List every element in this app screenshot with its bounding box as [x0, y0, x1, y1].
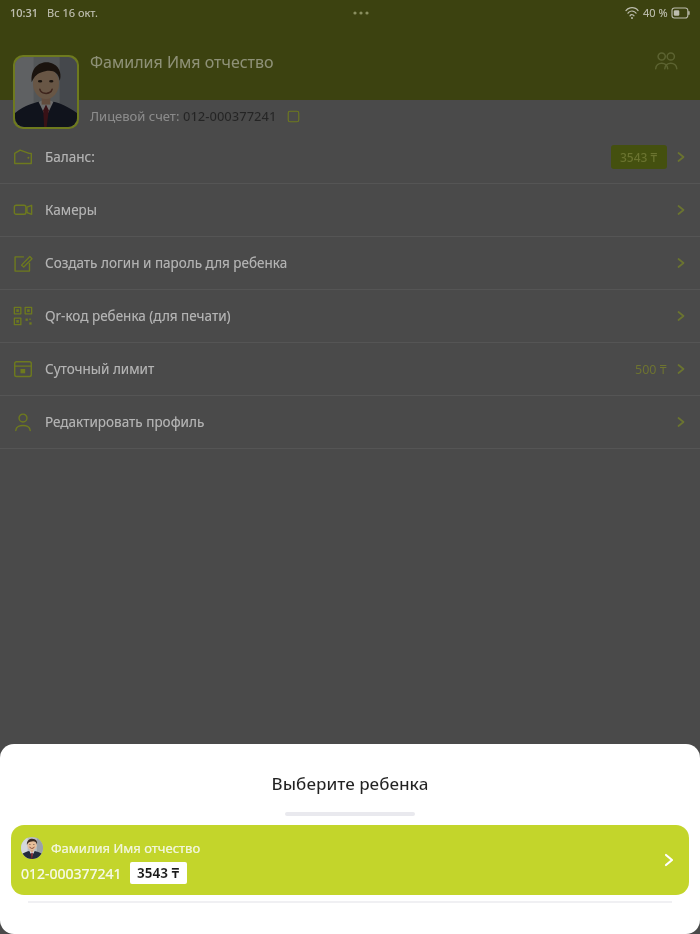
- staticText: 012-000377241: [183, 107, 277, 125]
- staticText: 3543 ₸: [620, 149, 658, 165]
- staticText: Вс 16 окт.: [47, 5, 98, 20]
- staticText: 40 %: [643, 5, 668, 20]
- button[interactable]: Qr-код ребенка (для печати): [0, 290, 700, 342]
- button[interactable]: Баланс:: [0, 131, 700, 183]
- staticText: Камеры: [45, 201, 98, 219]
- staticText: Выберите ребенка: [0, 772, 700, 795]
- staticText: Редактировать профиль: [45, 413, 205, 431]
- button[interactable]: Фамилия Имя отчество: [11, 825, 689, 895]
- staticText: Суточный лимит: [45, 360, 155, 378]
- staticText: 500 ₸: [635, 361, 667, 378]
- staticText: Создать логин и пароль для ребенка: [45, 254, 288, 272]
- button[interactable]: Редактировать профиль: [0, 396, 700, 448]
- staticText: 3543 ₸: [137, 864, 180, 882]
- staticText: 012-000377241: [21, 864, 122, 883]
- staticText: Баланс:: [45, 148, 95, 166]
- staticText: Qr-код ребенка (для печати): [45, 307, 231, 325]
- staticText: Лицевой счет:: [90, 107, 183, 125]
- button[interactable]: Copy account number: [283, 106, 303, 126]
- button[interactable]: Child photo: [15, 57, 77, 127]
- button[interactable]: Суточный лимит: [0, 343, 700, 395]
- staticText: 10:31: [10, 5, 39, 20]
- button[interactable]: Children list: [646, 42, 686, 82]
- button[interactable]: Камеры: [0, 184, 700, 236]
- staticText: Фамилия Имя отчество: [90, 51, 274, 73]
- button[interactable]: Создать логин и пароль для ребенка: [0, 237, 700, 289]
- staticText: Фамилия Имя отчество: [51, 839, 201, 857]
